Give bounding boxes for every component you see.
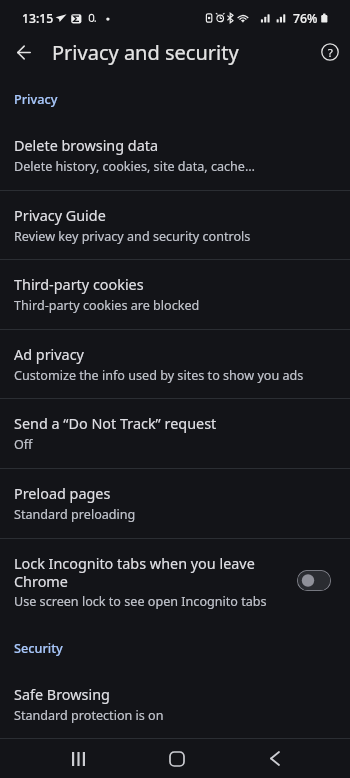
button: Privacy xyxy=(14,90,58,107)
staticText: Third-party cookies xyxy=(14,275,144,295)
button[interactable]: Lock Incognito tabs when you leave Chrom… xyxy=(0,538,350,625)
staticText: Privacy and security xyxy=(52,39,239,66)
button[interactable]: Help xyxy=(306,28,350,76)
staticText: Safe Browsing xyxy=(14,685,110,705)
staticText: Customize the info used by sites to show… xyxy=(14,367,304,384)
staticText: Security xyxy=(14,639,63,656)
staticText: Review key privacy and security controls xyxy=(14,228,251,245)
button[interactable]: Preload pages xyxy=(0,468,350,538)
staticText: Privacy xyxy=(14,90,58,107)
staticText: Delete history, cookies, site data, cach… xyxy=(14,158,255,175)
button[interactable]: Home xyxy=(128,739,226,778)
button[interactable]: Privacy Guide xyxy=(0,190,350,260)
staticText: Send a “Do Not Track” request xyxy=(14,414,217,434)
button[interactable]: Back xyxy=(226,739,324,778)
staticText: 76% xyxy=(293,10,318,27)
button: Security xyxy=(14,639,63,656)
staticText: Privacy Guide xyxy=(14,206,106,226)
button[interactable]: Safe Browsing xyxy=(0,669,350,739)
button[interactable]: Third-party cookies xyxy=(0,259,350,329)
staticText: 13:15 xyxy=(22,10,54,27)
staticText: Off xyxy=(14,436,33,453)
button[interactable]: Lock Incognito tabs toggle xyxy=(297,570,331,591)
staticText: Preload pages xyxy=(14,484,111,504)
button[interactable]: Recent apps xyxy=(30,739,128,778)
button[interactable]: Back xyxy=(0,28,48,76)
staticText: ? xyxy=(328,45,333,60)
staticText: Lock Incognito tabs when you leave Chrom… xyxy=(14,554,290,591)
staticText: Delete browsing data xyxy=(14,136,159,156)
staticText: Use screen lock to see open Incognito ta… xyxy=(14,593,267,610)
button[interactable]: Send a “Do Not Track” request xyxy=(0,398,350,468)
staticText: Standard preloading xyxy=(14,506,136,523)
staticText: Standard protection is on xyxy=(14,707,164,724)
staticText: Ad privacy xyxy=(14,345,84,365)
staticText: Third-party cookies are blocked xyxy=(14,297,200,314)
button[interactable]: Ad privacy xyxy=(0,329,350,399)
button[interactable]: Delete browsing data xyxy=(0,120,350,190)
